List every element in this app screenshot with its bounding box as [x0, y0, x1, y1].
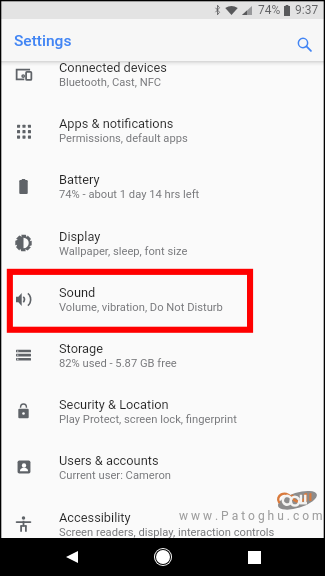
staticText: Battery [59, 172, 100, 187]
staticText: 74% [258, 3, 281, 17]
staticText: Users & accounts [59, 453, 159, 468]
staticText: 82% used - 5.87 GB free [59, 357, 177, 370]
button[interactable]: Search [288, 28, 320, 60]
staticText: Accessibility [59, 510, 131, 525]
staticText: Volume, vibration, Do Not Disturb [59, 301, 223, 314]
button[interactable]: Users & accounts [0, 439, 325, 495]
button[interactable]: Back [53, 538, 91, 576]
button[interactable]: Storage [0, 327, 325, 383]
button[interactable]: Recent apps [235, 538, 273, 576]
staticText: Screen readers, display, interaction con… [59, 526, 275, 539]
staticText: 9:37 [295, 3, 319, 17]
staticText: Security & Location [59, 397, 169, 412]
staticText: Bluetooth, Cast, NFC [59, 76, 162, 89]
staticText: Wallpaper, sleep, font size [59, 245, 188, 258]
staticText: Storage [59, 341, 103, 356]
button[interactable]: Security & Location [0, 383, 325, 439]
button[interactable]: Home [144, 538, 182, 576]
button[interactable]: Sound [0, 271, 325, 327]
button[interactable]: Apps & notifications [0, 102, 325, 158]
staticText: Settings [14, 32, 72, 50]
button[interactable]: Battery [0, 158, 325, 214]
button[interactable]: Connected devices [0, 46, 325, 102]
button[interactable]: Accessibility [0, 496, 325, 552]
staticText: Play Protect, screen lock, fingerprint [59, 413, 237, 426]
staticText: Permissions, default apps [59, 132, 188, 145]
staticText: Connected devices [59, 60, 167, 75]
staticText: Display [59, 229, 101, 244]
button[interactable]: Display [0, 215, 325, 271]
staticText: Sound [59, 285, 96, 300]
staticText: Current user: Cameron [59, 469, 171, 482]
staticText: w w w . P a t o g h u . c o m [179, 509, 323, 523]
staticText: Apps & notifications [59, 116, 174, 131]
staticText: 74% - about 1 day 14 hrs left [59, 188, 200, 201]
